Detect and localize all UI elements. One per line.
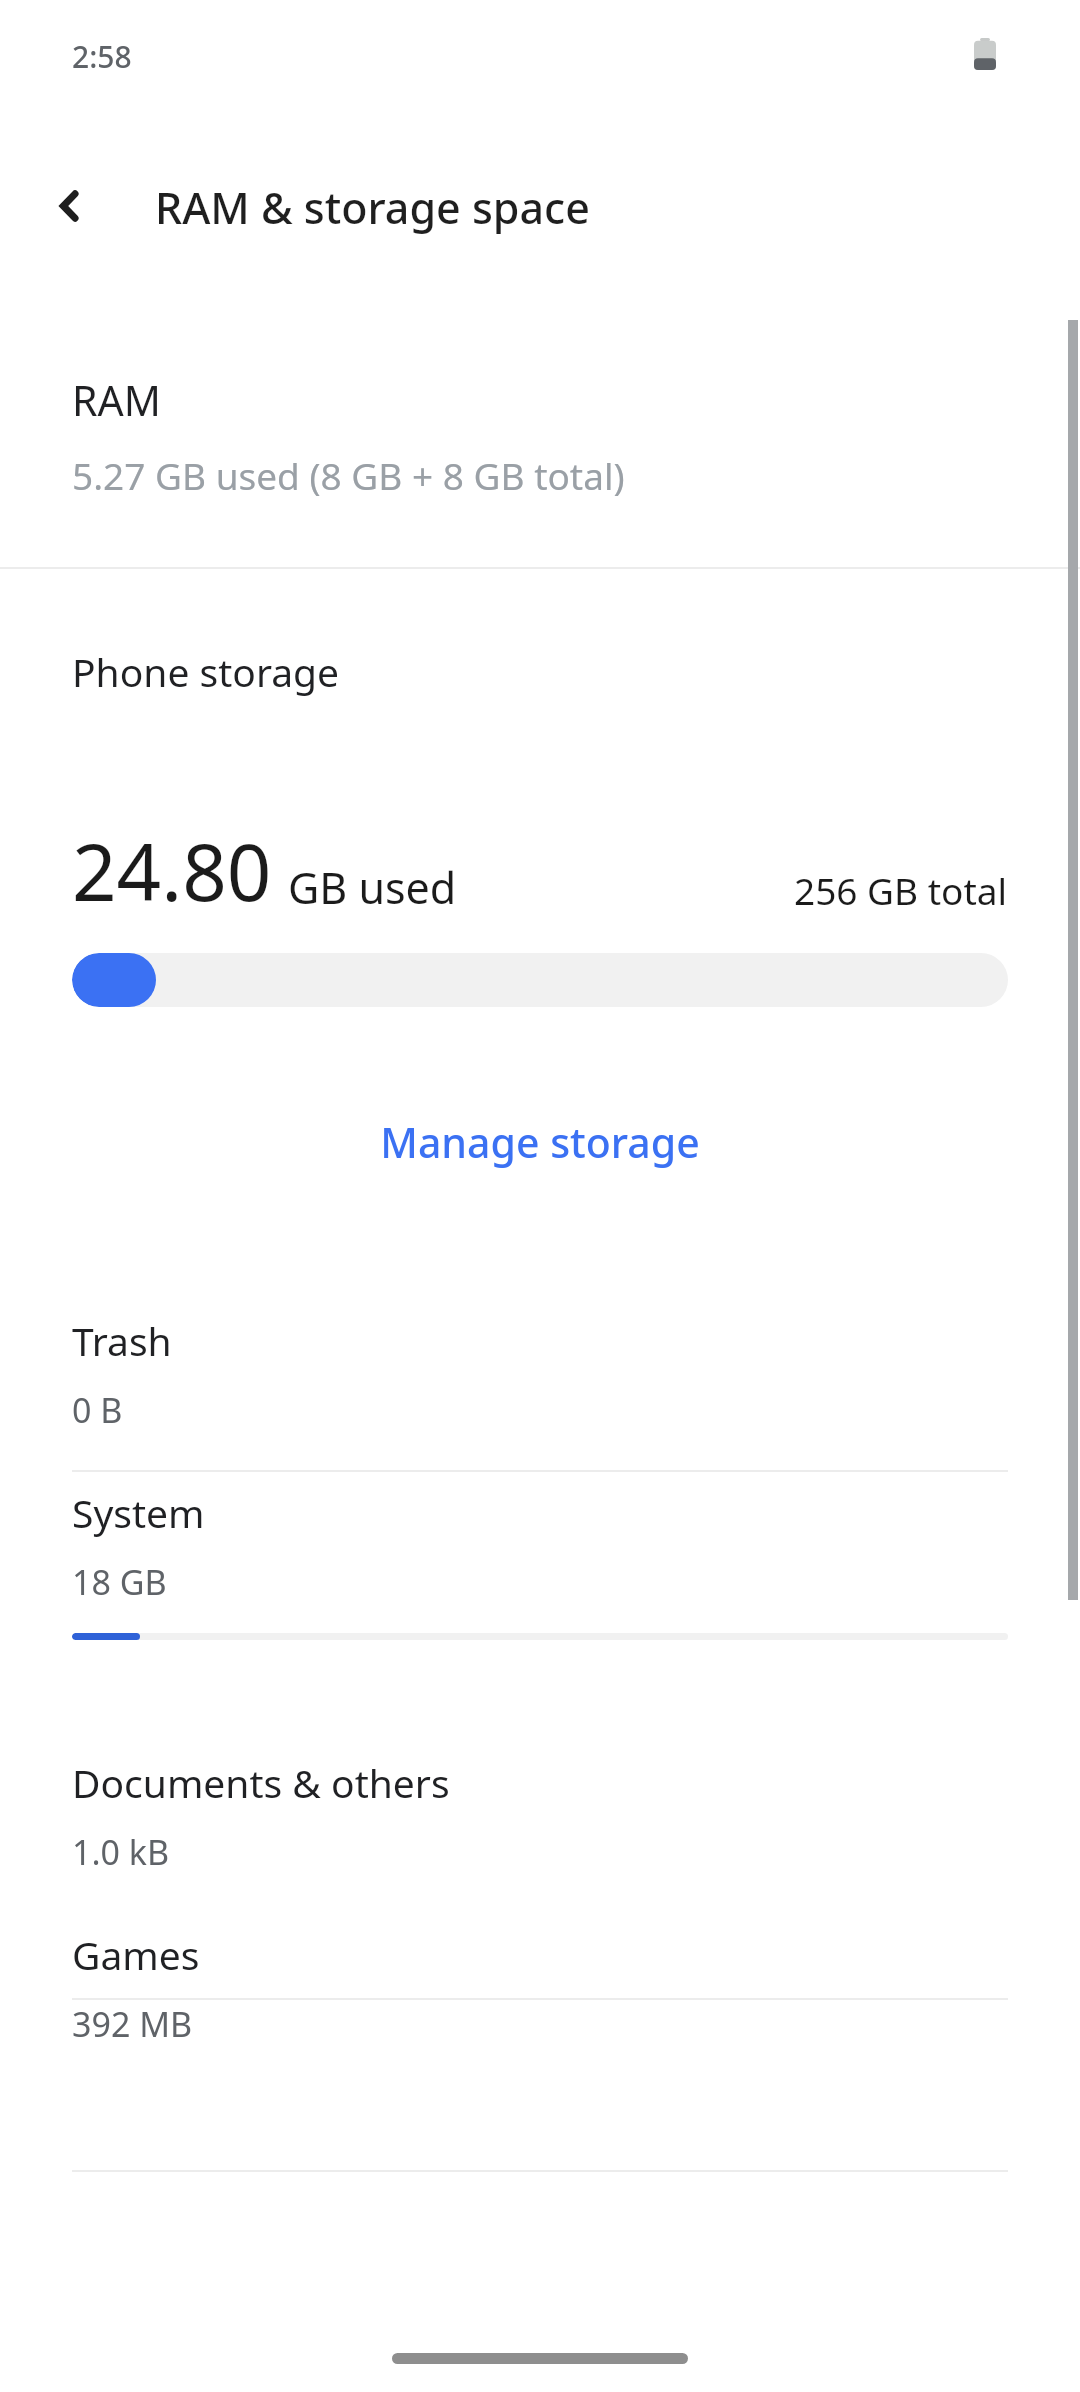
button[interactable]: Games [0,1914,1080,2096]
staticText: RAM & storage space [155,178,590,237]
staticText: 5.27 GB used (8 GB + 8 GB total) [72,450,625,500]
staticText: Manage storage [380,1114,700,1170]
staticText: GB used [288,858,457,917]
button[interactable]: System [0,1472,1080,1654]
staticText: 1.0 kB [72,1829,170,1875]
button[interactable]: Documents & others [0,1742,1080,1924]
staticText: 24.80 [72,818,272,924]
staticText: Trash [72,1314,172,1367]
staticText: 18 GB [72,1559,167,1605]
staticText: Games [72,1928,200,1981]
staticText: 0 B [72,1387,123,1433]
staticText: RAM [72,372,161,428]
button[interactable]: RAM [0,350,1080,522]
button[interactable]: Trash [0,1300,1080,1482]
staticText: Phone storage [72,645,340,698]
button[interactable]: Manage storage [0,1098,1080,1186]
button[interactable]: Back [34,170,106,242]
staticText: 2:58 [72,36,132,77]
staticText: 256 GB total [794,865,1008,915]
staticText: 392 MB [72,2001,193,2047]
staticText: System [72,1486,205,1539]
staticText: Documents & others [72,1756,450,1809]
